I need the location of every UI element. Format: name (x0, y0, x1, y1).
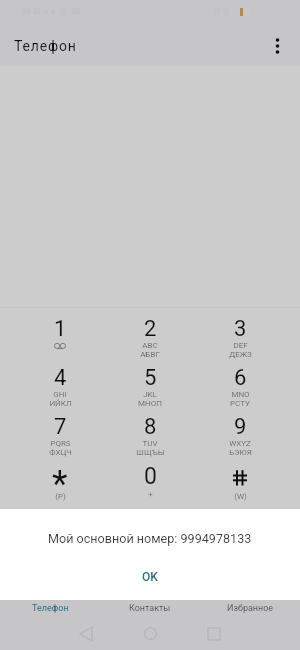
staticText: ФХЦЧ (49, 448, 72, 457)
button[interactable]: 0 (105, 457, 195, 506)
staticText: PQRS (50, 439, 71, 448)
staticText: GHI (53, 390, 67, 399)
staticText: ABC (142, 341, 158, 350)
button[interactable]: 3 (195, 310, 285, 359)
staticText: TUV (142, 439, 158, 448)
button[interactable]: 9 (195, 408, 285, 457)
staticText: ЬЭЮЯ (229, 448, 252, 457)
button[interactable]: (W) (195, 457, 285, 506)
button[interactable]: OK (122, 566, 178, 588)
staticText: Избранное (227, 603, 274, 614)
staticText: ШЩЪЫ (136, 448, 165, 457)
staticText: + (148, 490, 153, 499)
staticText: 2 (144, 316, 157, 342)
staticText: * (52, 463, 68, 505)
button[interactable]: More options (254, 25, 300, 66)
button[interactable]: 1 (15, 310, 105, 359)
button[interactable]: 8 (105, 408, 195, 457)
staticText: JKL (143, 390, 157, 399)
staticText: 5 (144, 365, 157, 391)
staticText: 8 (144, 414, 157, 440)
button[interactable]: 6 (195, 359, 285, 408)
staticText: 7 (54, 414, 67, 440)
staticText: WXYZ (229, 439, 251, 448)
staticText: DEF (233, 341, 248, 350)
button[interactable]: 5 (105, 359, 195, 408)
staticText: (P) (55, 492, 66, 501)
staticText: 0 (144, 463, 157, 490)
staticText: 9 (234, 414, 247, 440)
staticText: Контакты (129, 603, 171, 614)
button[interactable]: * (15, 457, 105, 506)
staticText: РСТУ (230, 399, 250, 408)
staticText: Телефон (32, 603, 69, 614)
button[interactable]: 7 (15, 408, 105, 457)
staticText: 4 (54, 365, 67, 391)
staticText: ДЕЖЗ (229, 350, 252, 359)
staticText: АБВГ (140, 350, 160, 359)
staticText: OK (142, 570, 158, 584)
staticText: (W) (234, 492, 247, 501)
button[interactable]: 2 (105, 310, 195, 359)
staticText: MNO (231, 390, 250, 399)
button[interactable]: Телефон (0, 600, 100, 617)
button[interactable]: Избранное (200, 600, 300, 617)
staticText: 3 (234, 316, 247, 342)
button[interactable]: Контакты (100, 600, 200, 617)
staticText: Мой основной номер: 9994978133 (48, 531, 252, 546)
staticText: 6 (234, 365, 247, 391)
staticText: 1 (54, 316, 67, 342)
button[interactable]: 4 (15, 359, 105, 408)
staticText: МНОП (138, 399, 162, 408)
staticText: ИЙКЛ (49, 399, 72, 408)
staticText: Телефон (14, 38, 77, 54)
